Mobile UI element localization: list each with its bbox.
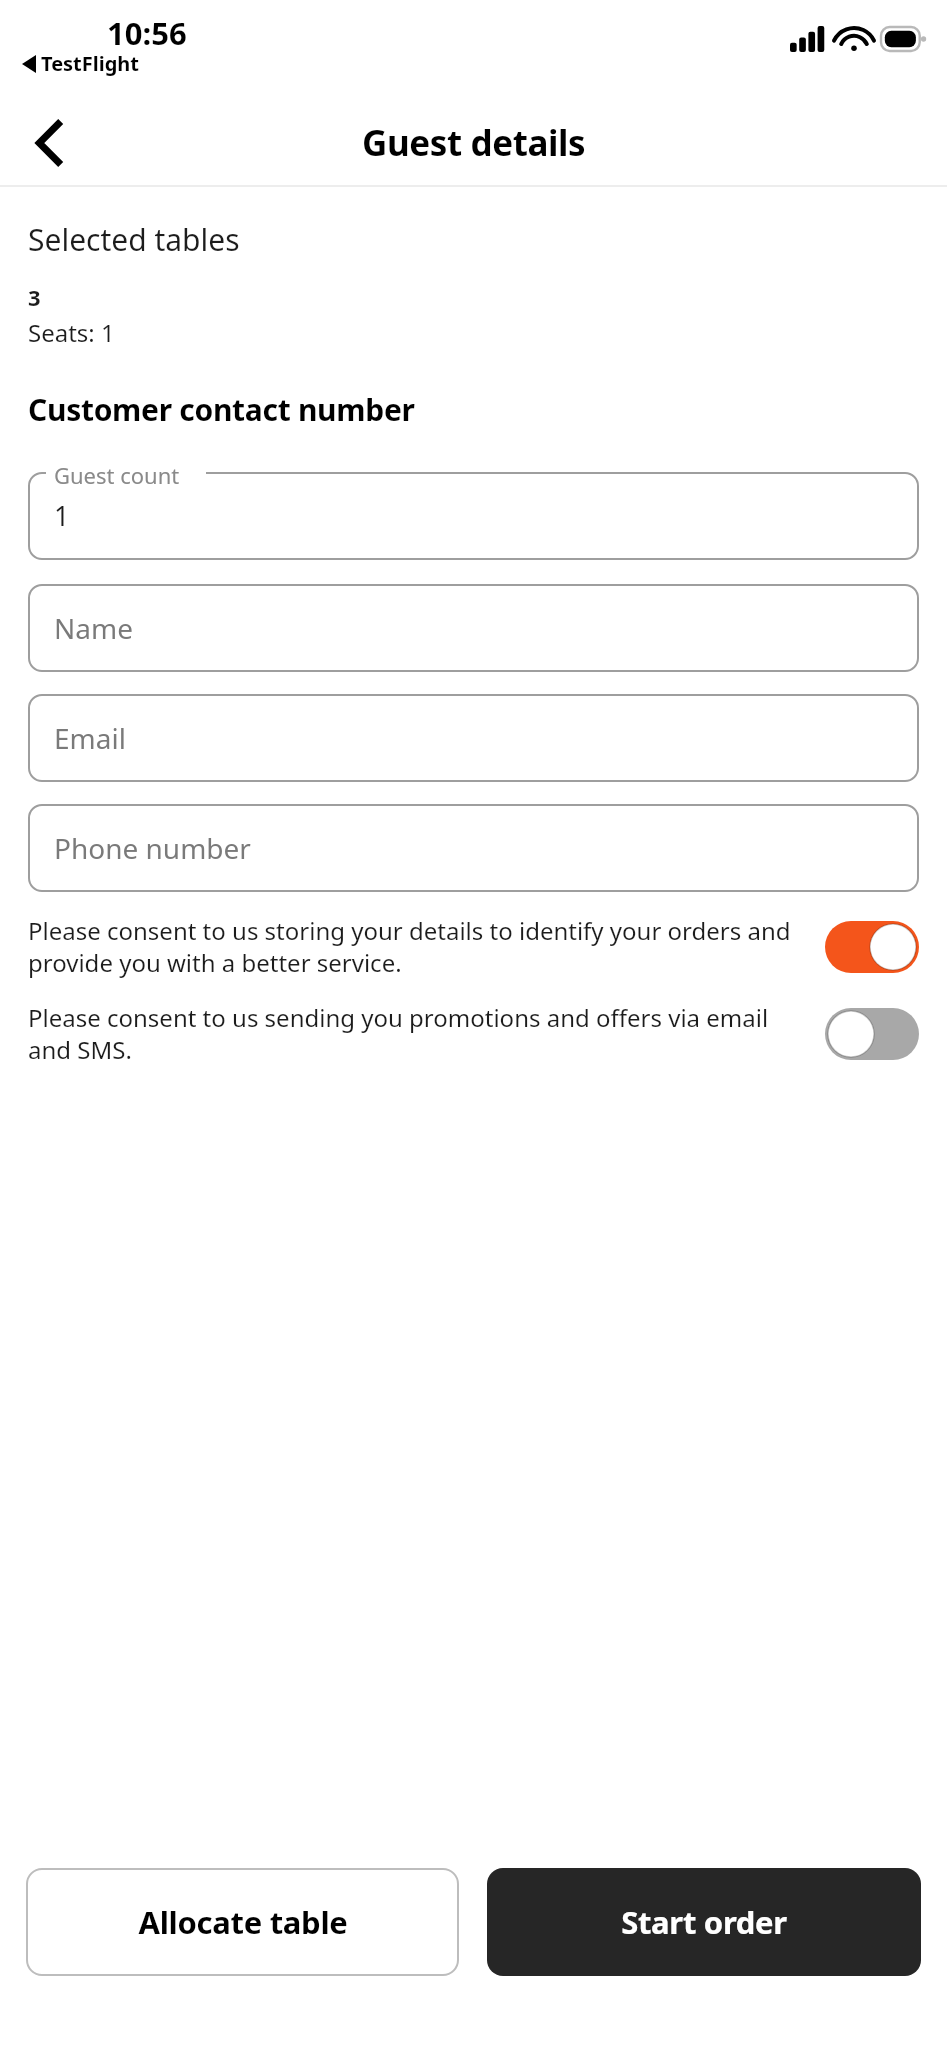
button[interactable]: Allocate table <box>26 1868 459 1976</box>
staticText: Allocate table <box>138 1901 348 1943</box>
staticText: Email <box>54 719 126 757</box>
staticText: Guest details <box>362 119 586 167</box>
staticText: Customer contact number <box>28 389 415 430</box>
button[interactable]: Email <box>28 694 919 782</box>
button[interactable]: Start order <box>487 1868 921 1976</box>
staticText: Phone number <box>54 829 251 867</box>
button[interactable]: Name <box>28 584 919 672</box>
staticText: TestFlight <box>41 50 140 77</box>
staticText: Selected tables <box>28 219 240 260</box>
button[interactable]: Please consent to us storing your detail… <box>28 914 919 979</box>
staticText: Seats: 1 <box>28 316 115 349</box>
button[interactable]: Please consent to us sending you promoti… <box>28 1001 919 1066</box>
staticText: 1 <box>54 497 70 534</box>
other: Consent on <box>825 921 919 973</box>
staticText: 10:56 <box>107 12 187 54</box>
staticText: Name <box>54 609 133 647</box>
staticText: Please consent to us storing your detail… <box>28 914 809 979</box>
staticText: 3 <box>28 282 41 312</box>
staticText: Please consent to us sending you promoti… <box>28 1001 809 1066</box>
other: Consent off <box>825 1008 919 1060</box>
button[interactable]: Guest count <box>28 460 919 560</box>
staticText: Guest count <box>54 460 180 490</box>
staticText: Start order <box>621 1901 787 1943</box>
button[interactable]: Phone number <box>28 804 919 892</box>
button[interactable]: Back <box>20 114 78 172</box>
